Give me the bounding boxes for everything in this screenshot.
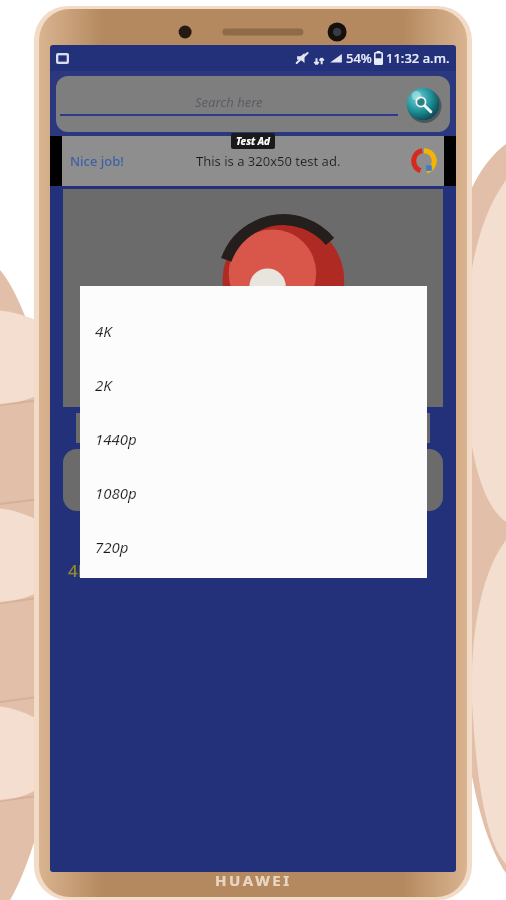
staticText: 1440p — [95, 429, 137, 449]
staticText: This is a 320x50 test ad. — [196, 152, 341, 170]
staticText: 4K — [95, 321, 112, 341]
staticText: 11:32 a.m. — [386, 49, 450, 67]
staticText: 720p — [95, 537, 129, 557]
staticText: 1080p — [95, 483, 137, 503]
staticText: 2K — [95, 375, 112, 395]
staticText: Test Ad — [236, 134, 270, 148]
button[interactable] — [76, 413, 430, 443]
staticText: Nice job! — [70, 152, 124, 170]
button[interactable]: Nice job! — [62, 136, 444, 186]
button[interactable]: 1080p — [80, 466, 427, 520]
button[interactable]: 4K — [63, 449, 443, 511]
staticText: HUAWEI — [215, 870, 292, 890]
button[interactable]: 2K — [80, 358, 427, 412]
staticText: 54% — [346, 49, 372, 67]
button[interactable]: 720p — [80, 520, 427, 574]
staticText: Search here — [195, 93, 263, 111]
button[interactable]: 4K — [80, 304, 427, 358]
staticText: 4K — [68, 559, 89, 582]
button[interactable]: 1440p — [80, 412, 427, 466]
button[interactable]: Search here — [56, 76, 450, 132]
button[interactable]: Search — [404, 85, 442, 123]
